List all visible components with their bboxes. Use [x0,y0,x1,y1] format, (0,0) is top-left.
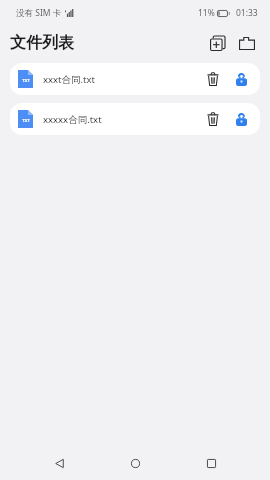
button[interactable]: TXT [10,103,260,135]
staticText: TXT [22,118,30,124]
staticText: TXT [22,78,30,84]
button[interactable]: Delete [202,68,224,90]
button[interactable]: TXT [10,63,260,95]
staticText: xxxt合同.txt [43,73,202,86]
staticText: xxxxx合同.txt [43,113,202,126]
staticText: 11% [198,7,215,19]
button[interactable]: Lock [230,108,252,130]
button[interactable]: Home [118,446,152,480]
button[interactable]: New file [204,30,230,56]
button[interactable]: Delete [202,108,224,130]
button[interactable]: Recents [194,446,228,480]
button[interactable]: Open folder [234,30,260,56]
staticText: 01:33 [236,7,258,19]
button[interactable]: Lock [230,68,252,90]
staticText: 文件列表 [10,33,74,53]
button[interactable]: Back [42,446,76,480]
staticText: 没有 SIM 卡 [16,7,62,19]
